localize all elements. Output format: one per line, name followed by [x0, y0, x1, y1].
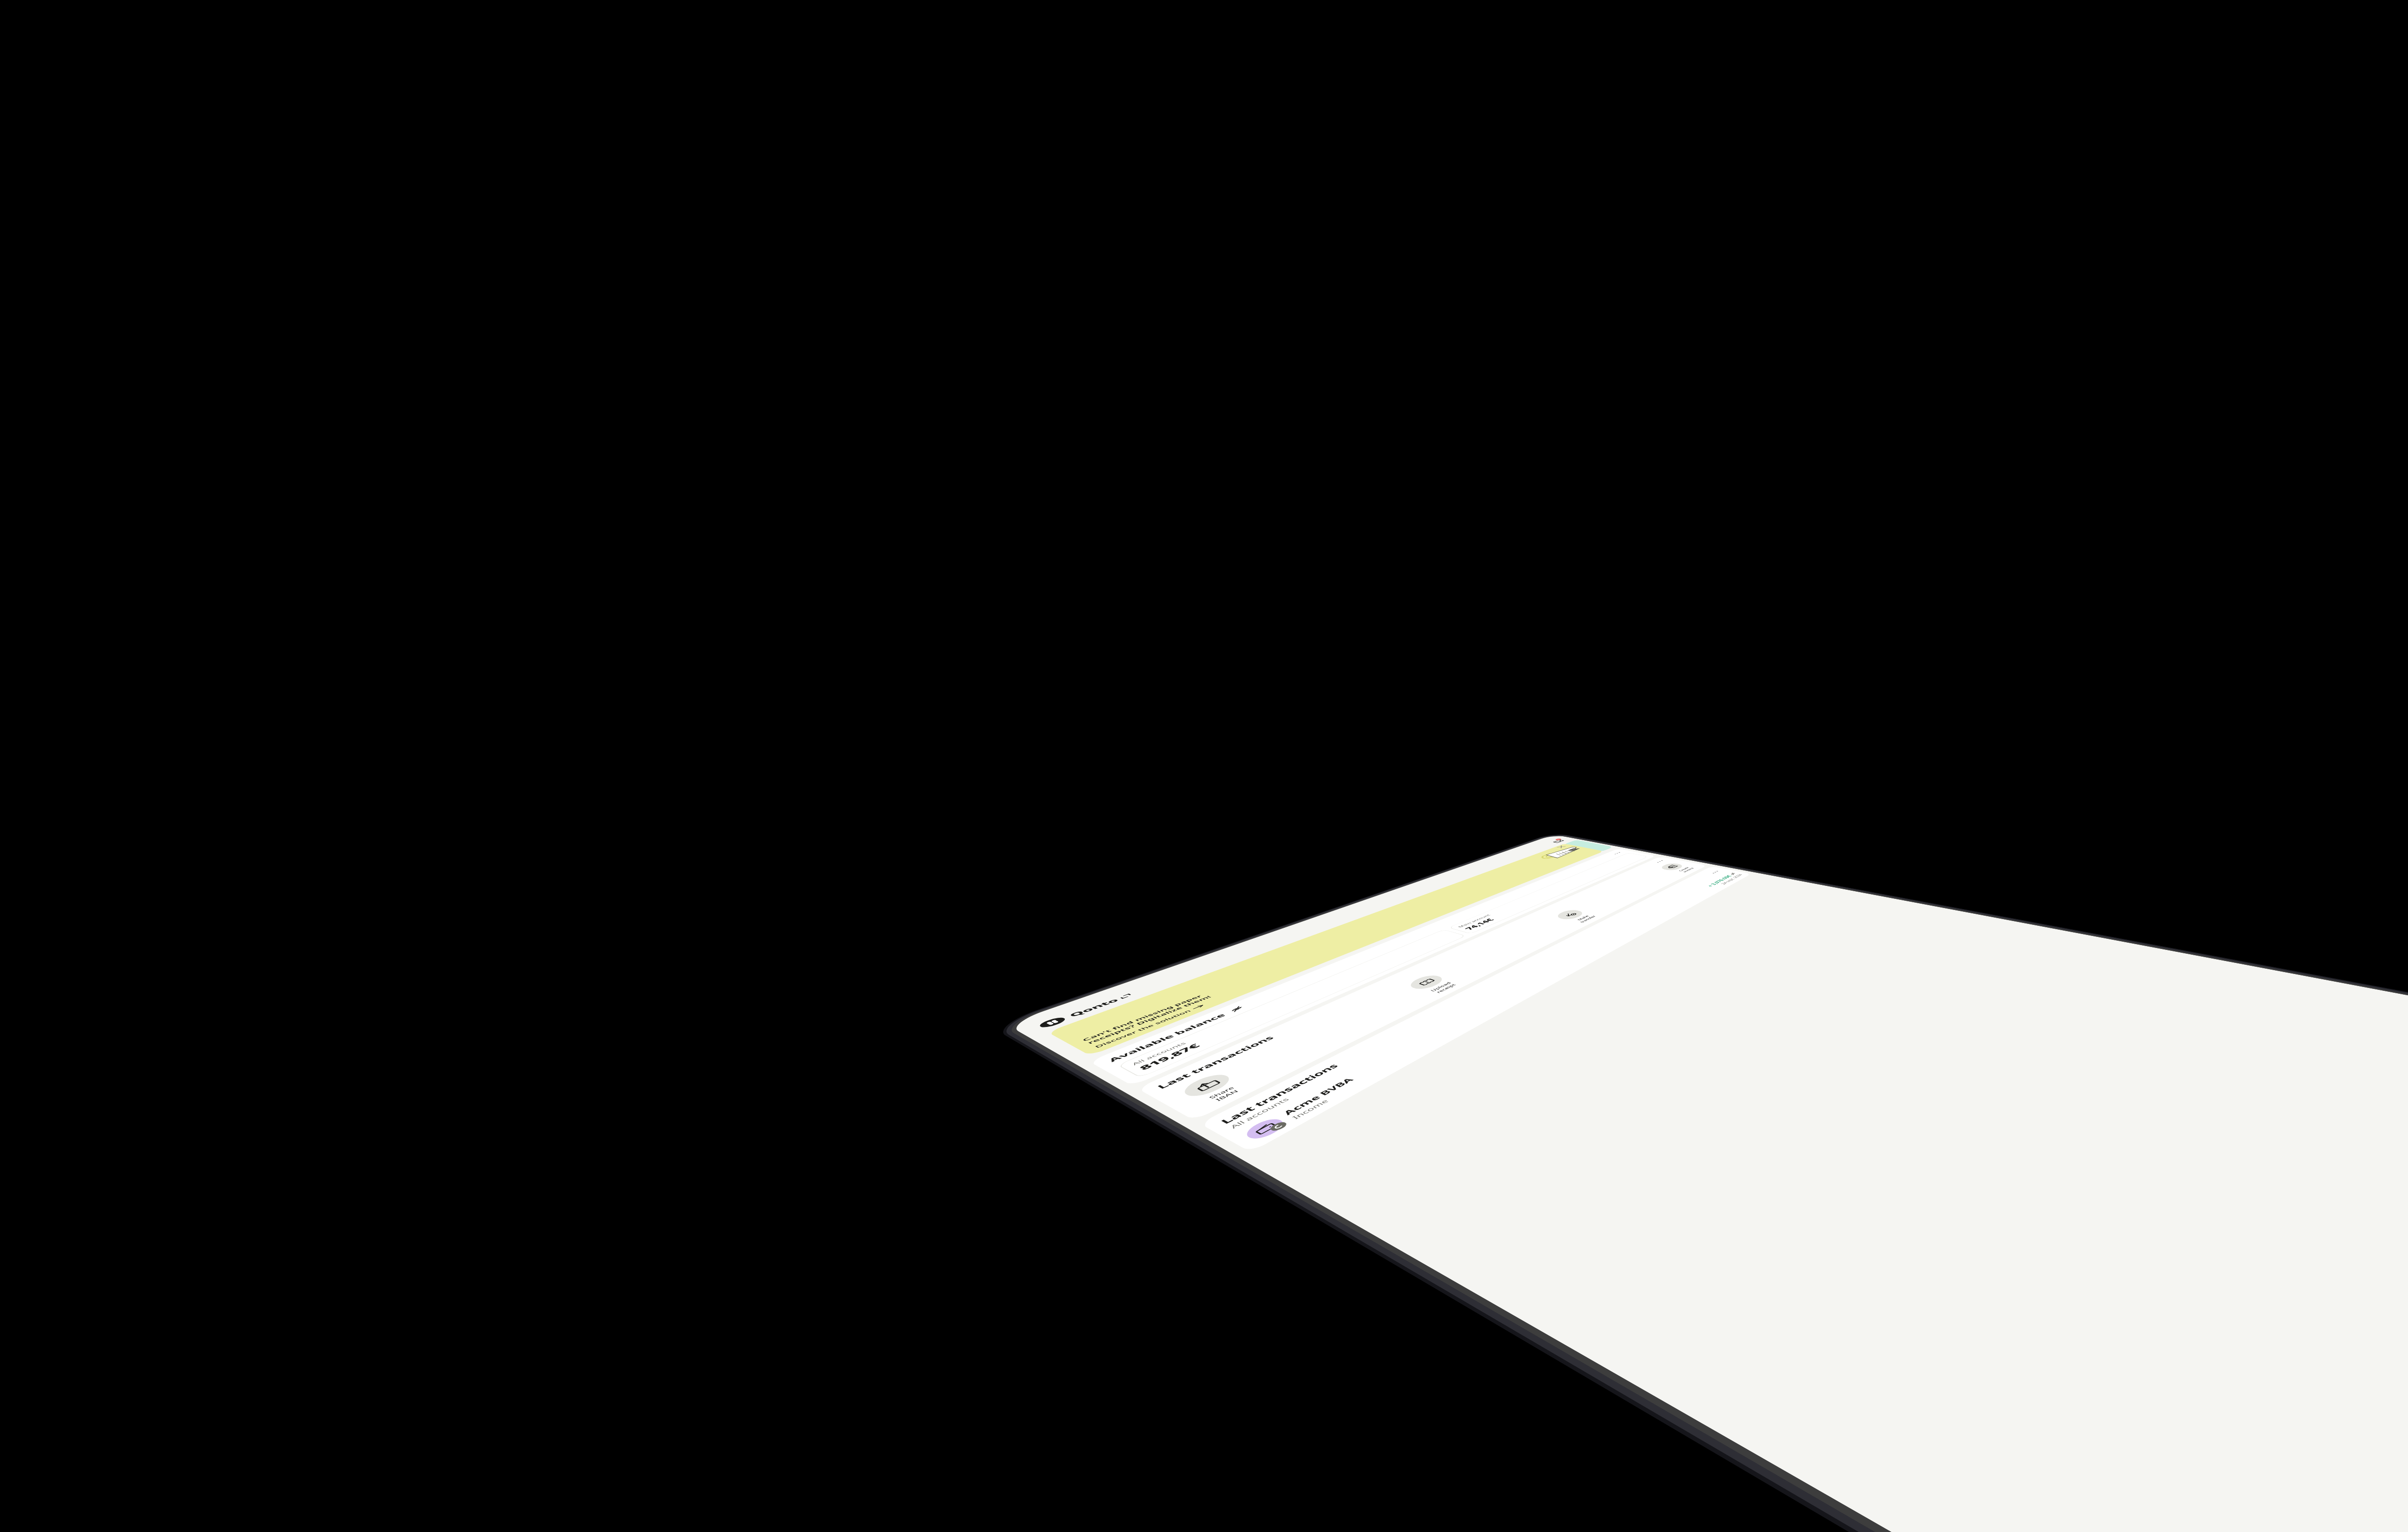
- button[interactable]: [1563, 840, 1614, 852]
- button[interactable]: Inbox, 5 unread: [1547, 838, 1569, 844]
- button[interactable]: More options: [1609, 851, 1625, 856]
- staticText: Make transfer: [1574, 914, 1597, 923]
- staticText: All accounts: [1130, 1041, 1188, 1066]
- button[interactable]: Create invoice: [1654, 861, 1700, 875]
- button[interactable]: Acme BVBA: [1241, 872, 1744, 1142]
- staticText: 74,14€: [1462, 918, 1497, 931]
- staticText: Last transactions: [1154, 1035, 1277, 1090]
- staticText: Acme BVBA: [1280, 1077, 1356, 1116]
- staticText: 819,87€: [1136, 1042, 1203, 1072]
- staticText: Can't find missing paper receipts? Digit…: [1080, 993, 1213, 1045]
- staticText: 5: [1556, 839, 1561, 840]
- button[interactable]: Last transactions: [1199, 866, 1752, 1152]
- button[interactable]: More options: [1707, 869, 1724, 875]
- button[interactable]: All accounts: [1117, 929, 1466, 1078]
- button[interactable]: Upload receipt: [1399, 971, 1466, 998]
- staticText: Last transactions: [1217, 1062, 1341, 1126]
- button[interactable]: Hide balance: [1226, 1004, 1248, 1014]
- button[interactable]: Qonto: [1033, 991, 1138, 1031]
- staticText: Available balance: [1106, 1013, 1228, 1063]
- button[interactable]: Main account: [1448, 853, 1649, 934]
- button[interactable]: Dismiss: [1047, 844, 1604, 1056]
- staticText: + 3,076.00€: [1705, 875, 1733, 887]
- staticText: Income: [1290, 1098, 1330, 1120]
- staticText: All accounts: [1228, 1097, 1291, 1130]
- button[interactable]: Last transactions: [1137, 856, 1707, 1121]
- button[interactable]: Share IBAN: [1168, 1067, 1258, 1111]
- staticText: Create invoice: [1677, 866, 1695, 873]
- staticText: Discover the solution: [1093, 1009, 1192, 1049]
- staticText: Main account: [1456, 914, 1492, 928]
- other: Dismiss: [1557, 846, 1565, 848]
- staticText: Upload receipt: [1429, 981, 1458, 994]
- staticText: 24 sept. 2024: [1719, 874, 1744, 885]
- button[interactable]: Available balance: [1089, 848, 1656, 1086]
- staticText: Qonto: [1067, 998, 1121, 1018]
- button[interactable]: Make transfer: [1548, 907, 1603, 926]
- button[interactable]: More options: [1652, 859, 1668, 864]
- staticText: Share IBAN: [1207, 1086, 1241, 1103]
